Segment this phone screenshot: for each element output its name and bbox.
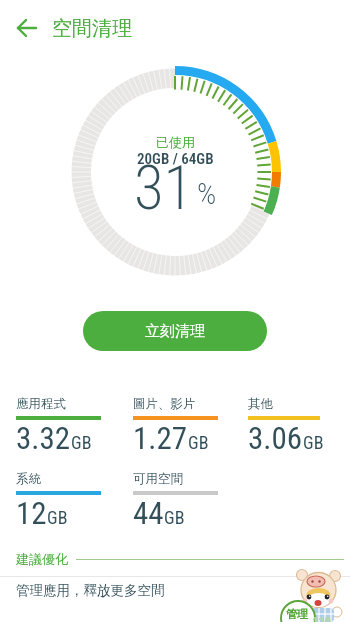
staticText: GB [188,432,209,453]
button[interactable]: 立刻清理 [83,311,267,351]
staticText: 3.32 [16,420,71,456]
staticText: 應用程式 [16,396,66,412]
staticText: GB [164,507,185,528]
staticText: 其他 [248,396,273,412]
staticText: 圖片、影片 [133,396,196,412]
staticText: 44 [133,495,164,531]
button[interactable]: 管理應用，釋放更多空間 [0,577,350,607]
button[interactable] [0,4,48,52]
staticText: GB [303,432,324,453]
staticText: 31 [134,152,194,223]
staticText: 管理 [286,607,308,621]
staticText: % [197,176,217,211]
staticText: 建議優化 [16,551,68,567]
staticText: GB [47,507,68,528]
staticText: 110 [312,613,331,622]
staticText: 立刻清理 [145,322,205,341]
staticText: 可用空間 [133,471,183,487]
staticText: 3.06 [248,420,303,456]
staticText: 管理應用，釋放更多空間 [16,582,165,599]
staticText: 12 [16,495,47,531]
staticText: 已使用 [156,134,195,150]
staticText: 系統 [16,471,41,487]
staticText: 1.27 [133,420,188,456]
staticText: GB [71,432,92,453]
staticText: 20GB / 64GB [137,150,214,168]
staticText: 空間清理 [52,16,132,41]
